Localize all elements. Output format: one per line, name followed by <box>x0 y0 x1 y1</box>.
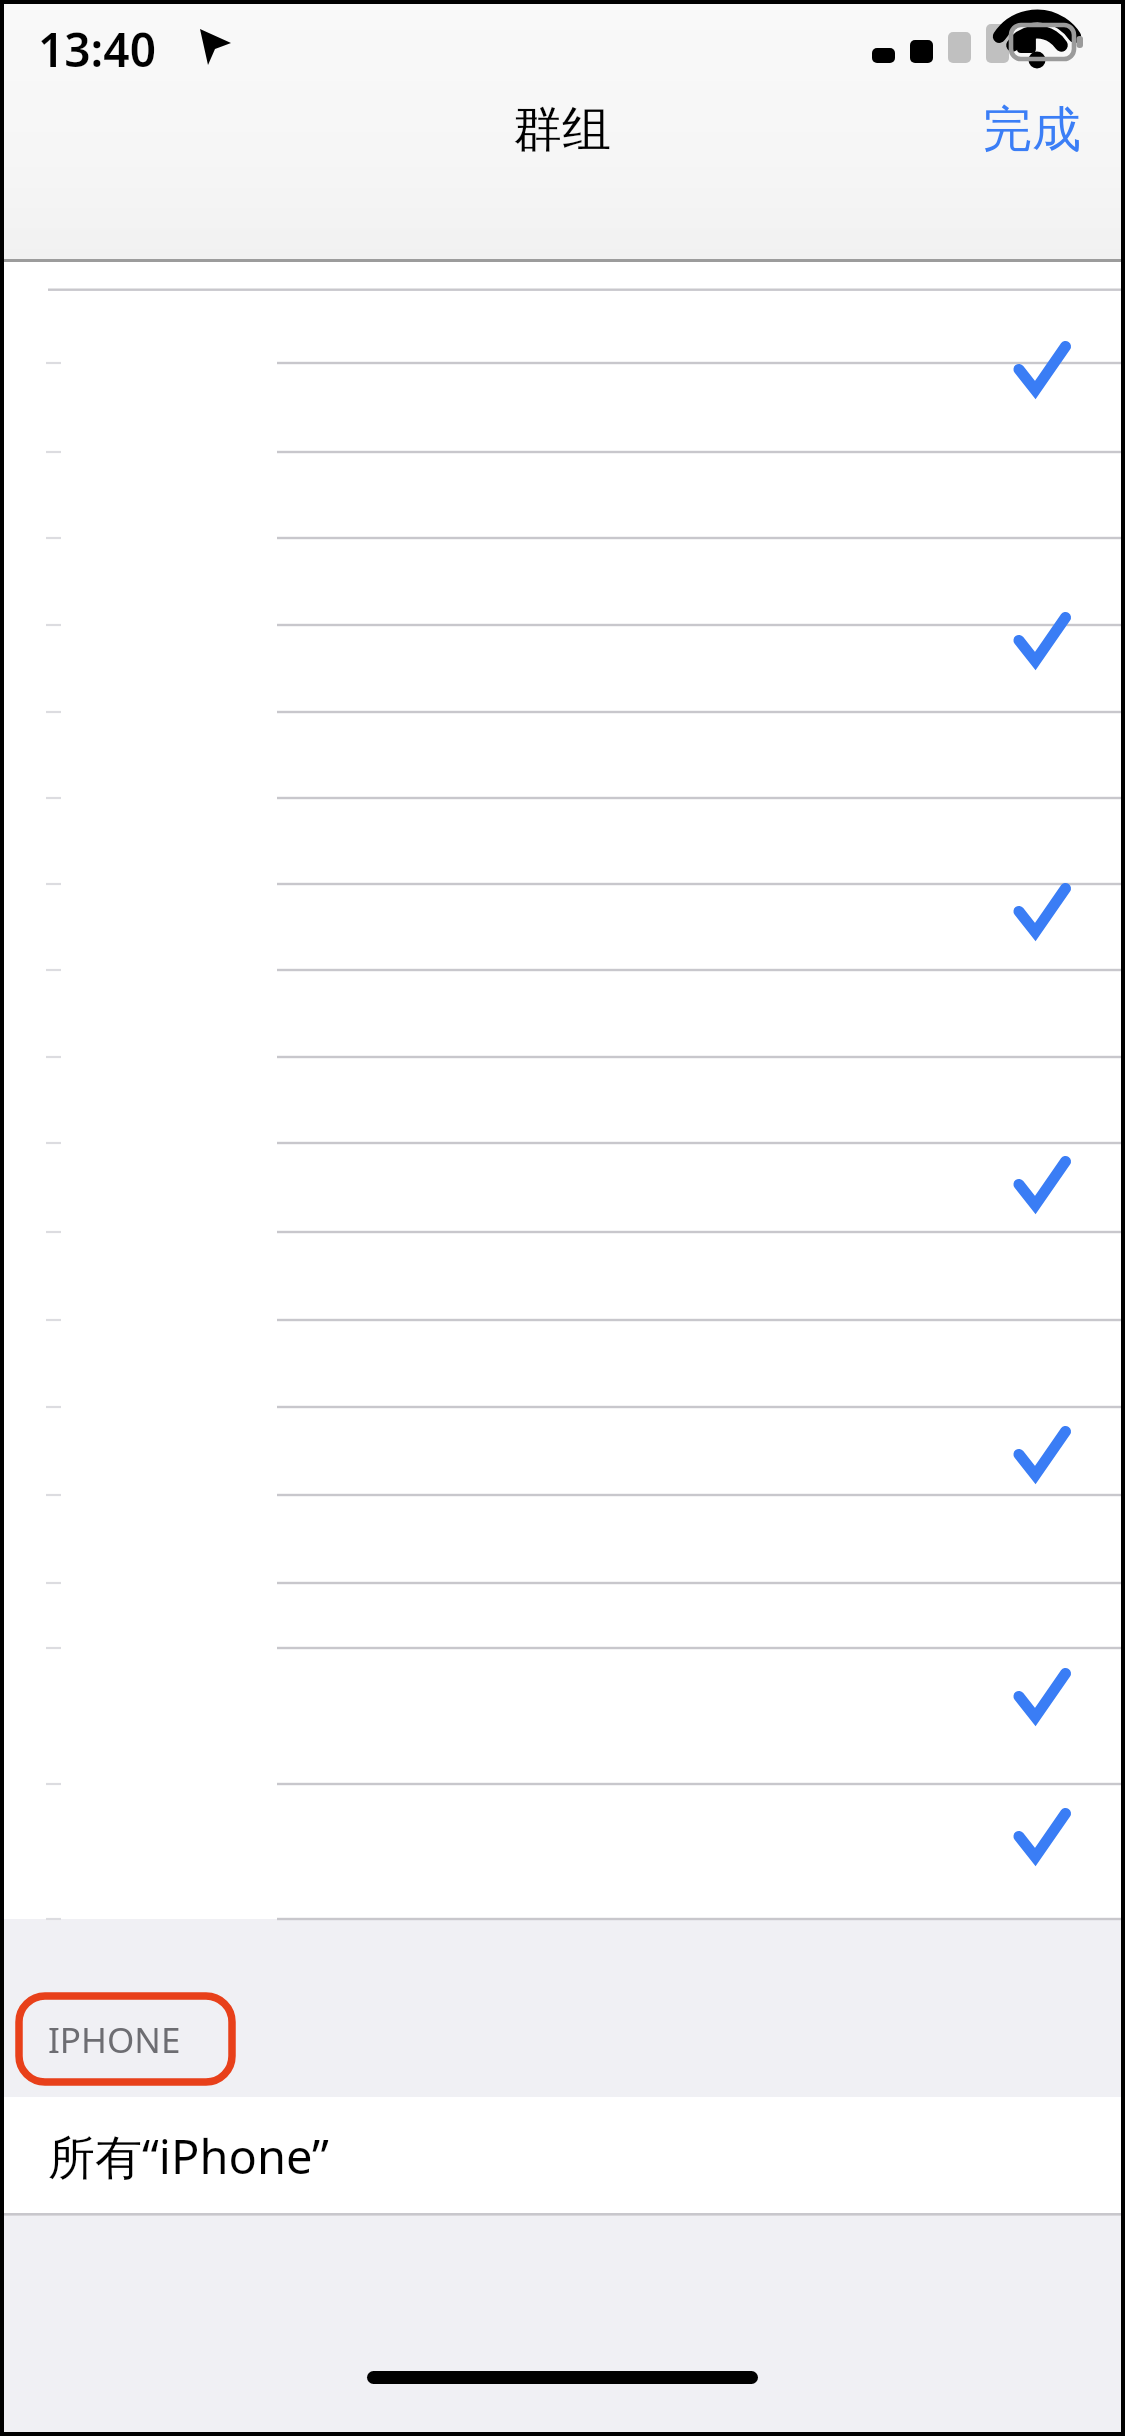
button[interactable]: Group 12 <box>4 1232 1121 1320</box>
button[interactable]: Group 4 <box>4 538 1121 625</box>
button[interactable]: Group 17 <box>4 1648 1121 1784</box>
button[interactable]: Group 5 <box>4 625 1121 712</box>
button[interactable]: Group 15 <box>4 1495 1121 1583</box>
button[interactable]: Group 13 <box>4 1320 1121 1407</box>
button[interactable]: Group 2 <box>4 363 1121 452</box>
button[interactable]: Group 14 <box>4 1407 1121 1495</box>
button[interactable]: Group 16 <box>4 1583 1121 1648</box>
button[interactable]: Group 10 <box>4 1057 1121 1143</box>
button[interactable]: All iPhone <box>4 2097 1121 2213</box>
button[interactable]: Done <box>880 82 1080 178</box>
button[interactable]: Group 18 <box>4 1784 1121 1919</box>
button[interactable]: Group 1 <box>4 262 1121 363</box>
button[interactable]: Group 8 <box>4 884 1121 970</box>
button[interactable]: Group 3 <box>4 452 1121 538</box>
button[interactable]: Group 11 <box>4 1143 1121 1232</box>
button[interactable]: Group 6 <box>4 712 1121 798</box>
button[interactable]: Group 7 <box>4 798 1121 884</box>
button[interactable]: Group 9 <box>4 970 1121 1057</box>
